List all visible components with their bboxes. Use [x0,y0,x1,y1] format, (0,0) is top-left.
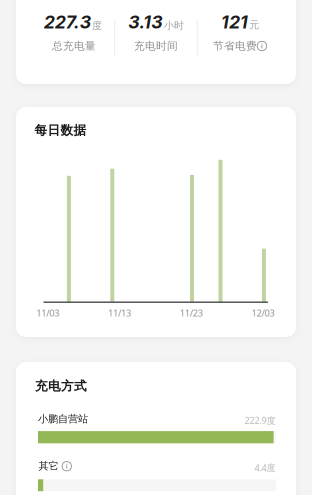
button[interactable]: 节省电费说明 [213,39,267,50]
staticText: 小鹏自营站 [38,413,88,425]
staticText: 227.3 [44,11,91,33]
staticText: 11/23 [180,307,203,319]
staticText: 12/03 [252,307,275,319]
staticText: 121 [221,11,248,33]
staticText: 每日数据 [34,122,86,138]
staticText: 小时 [164,19,184,32]
staticText: 元 [249,18,259,31]
staticText: 11/03 [36,307,59,319]
staticText: 其它 [38,459,58,472]
staticText: 度 [92,19,102,32]
staticText: 节省电费 [213,39,257,53]
staticText: 222.9度 [244,414,275,426]
staticText: 3.13 [128,11,162,33]
staticText: 4.4度 [254,461,275,474]
staticText: 总充电量 [52,39,96,53]
staticText: 11/13 [108,307,131,319]
staticText: 充电方式 [35,378,87,394]
button[interactable]: 其它充电方式说明 [38,459,72,469]
staticText: 充电时间 [134,39,178,53]
